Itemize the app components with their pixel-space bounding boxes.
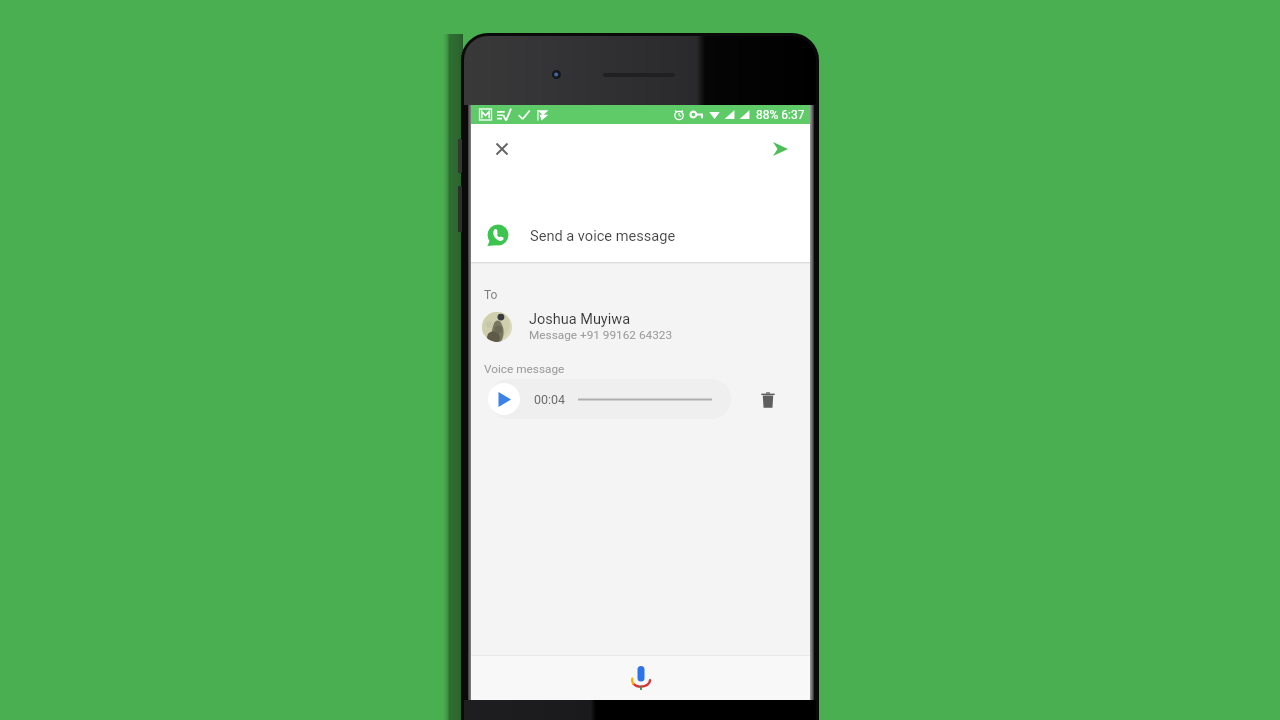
staticText: 88% 6:37 bbox=[756, 108, 805, 122]
button[interactable]: Voice search bbox=[624, 661, 658, 695]
staticText: Voice message bbox=[484, 362, 565, 376]
staticText: Send a voice message bbox=[530, 227, 676, 244]
button[interactable]: Send bbox=[762, 130, 799, 167]
button[interactable]: Close bbox=[483, 130, 520, 167]
button[interactable]: 00:04 bbox=[489, 379, 731, 419]
staticText: Joshua Muyiwa bbox=[529, 311, 631, 328]
button[interactable]: Delete bbox=[750, 382, 786, 418]
staticText: 00:04 bbox=[534, 392, 566, 407]
staticText: Message +91 99162 64323 bbox=[529, 328, 673, 342]
staticText: To bbox=[484, 288, 498, 302]
button[interactable]: Send a voice message bbox=[471, 208, 810, 262]
button[interactable]: Play bbox=[488, 383, 520, 415]
button[interactable]: Joshua Muyiwa bbox=[471, 311, 810, 342]
